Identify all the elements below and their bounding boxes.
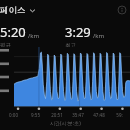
staticText: 평균 — [0, 42, 11, 47]
staticText: 59: — [116, 112, 123, 118]
staticText: 47:48 — [93, 112, 105, 118]
staticText: /km — [93, 32, 105, 40]
button[interactable]: 3:29 — [65, 20, 130, 47]
staticText: 3:29 — [65, 23, 91, 41]
staticText: 20:51 — [51, 112, 63, 118]
staticText: 0:00 — [9, 112, 18, 118]
button[interactable]: 5:20 — [0, 20, 65, 47]
button[interactable]: 페이스 — [0, 3, 40, 18]
staticText: 9:55 — [31, 112, 40, 118]
staticText: 최고 — [65, 42, 76, 47]
staticText: 5:20 — [0, 23, 26, 41]
button[interactable]: 정보 — [114, 2, 130, 18]
staticText: /km — [28, 32, 40, 40]
staticText: 시간(시:분:초) — [50, 120, 81, 127]
staticText: 35:47 — [72, 112, 84, 118]
staticText: 페이스 — [0, 5, 26, 16]
